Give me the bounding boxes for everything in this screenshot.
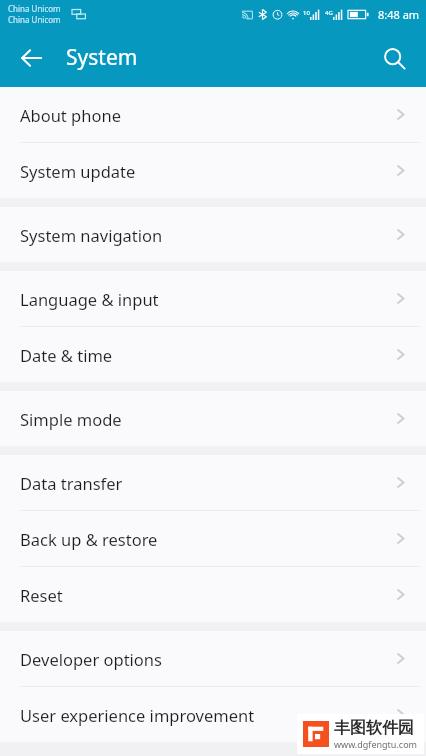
button[interactable]: User experience improvement <box>0 687 426 742</box>
staticText: China Unicom <box>8 3 61 14</box>
staticText: Reset <box>20 584 393 606</box>
staticText: 4G <box>325 9 333 17</box>
staticText: User experience improvement <box>20 704 393 726</box>
staticText: 丰图软件园 <box>334 718 414 738</box>
button[interactable]: Search <box>370 34 418 82</box>
button[interactable]: System update <box>0 143 426 198</box>
staticText: About phone <box>20 104 393 126</box>
staticText: China Unicom <box>8 14 61 25</box>
staticText: www.dgfengtu.com <box>334 738 418 750</box>
button[interactable]: About phone <box>0 87 426 142</box>
staticText: System navigation <box>20 224 393 246</box>
button[interactable]: Data transfer <box>0 455 426 510</box>
button[interactable]: Back up & restore <box>0 511 426 566</box>
staticText: Language & input <box>20 288 393 310</box>
button[interactable]: Back <box>8 34 56 82</box>
staticText: Back up & restore <box>20 528 393 550</box>
staticText: Developer options <box>20 648 393 670</box>
staticText: Date & time <box>20 344 393 366</box>
staticText: 10 <box>303 9 310 17</box>
staticText: System update <box>20 160 393 182</box>
button[interactable]: Date & time <box>0 327 426 382</box>
button[interactable]: Language & input <box>0 271 426 326</box>
staticText: 8:48 am <box>378 7 420 22</box>
button[interactable]: System navigation <box>0 207 426 262</box>
staticText: System <box>66 43 138 72</box>
button[interactable]: Reset <box>0 567 426 622</box>
staticText: Simple mode <box>20 408 393 430</box>
button[interactable]: Developer options <box>0 631 426 686</box>
staticText: Data transfer <box>20 472 393 494</box>
button[interactable]: Simple mode <box>0 391 426 446</box>
